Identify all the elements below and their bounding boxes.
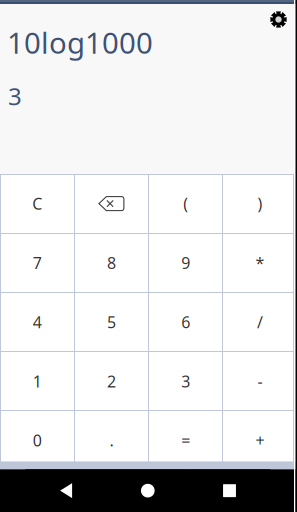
staticText: 8 (107, 252, 116, 273)
staticText: 0 (33, 430, 42, 451)
button[interactable]: 0 (0, 411, 74, 470)
staticText: * (255, 252, 264, 273)
staticText: . (109, 430, 113, 451)
button[interactable]: 6 (148, 292, 223, 352)
staticText: C (32, 193, 42, 214)
staticText: 3 (181, 371, 190, 392)
button[interactable]: Recents (189, 469, 270, 512)
button[interactable]: Home (107, 469, 189, 512)
button[interactable] (74, 174, 148, 233)
staticText: 6 (181, 311, 190, 333)
staticText: 4 (33, 311, 42, 333)
button[interactable]: C (0, 174, 74, 233)
staticText: + (255, 430, 264, 451)
button[interactable]: 5 (74, 292, 148, 352)
staticText: 1 (33, 371, 42, 392)
button[interactable]: ) (223, 174, 297, 233)
button[interactable]: = (148, 411, 223, 470)
staticText: - (257, 371, 262, 392)
staticText: 2 (107, 371, 116, 392)
button[interactable]: - (223, 352, 297, 411)
button[interactable]: * (223, 233, 297, 292)
button[interactable]: Settings (270, 4, 297, 28)
button[interactable]: Back (25, 469, 107, 512)
staticText: / (257, 311, 263, 333)
button[interactable]: 4 (0, 292, 74, 352)
button[interactable]: 7 (0, 233, 74, 292)
button[interactable]: 1 (0, 352, 74, 411)
staticText: 9 (181, 252, 190, 273)
staticText: 5 (107, 311, 116, 333)
staticText: ( (183, 193, 188, 214)
button[interactable]: . (74, 411, 148, 470)
button[interactable]: ( (148, 174, 223, 233)
button[interactable]: 2 (74, 352, 148, 411)
button[interactable]: 3 (148, 352, 223, 411)
staticText: 7 (33, 252, 42, 273)
button[interactable]: / (223, 292, 297, 352)
staticText: 3 (8, 80, 22, 112)
button[interactable]: 9 (148, 233, 223, 292)
staticText: = (181, 430, 190, 451)
button[interactable]: + (223, 411, 297, 470)
staticText: 10log1000 (7, 23, 153, 62)
button[interactable]: 8 (74, 233, 148, 292)
staticText: ) (257, 193, 262, 214)
